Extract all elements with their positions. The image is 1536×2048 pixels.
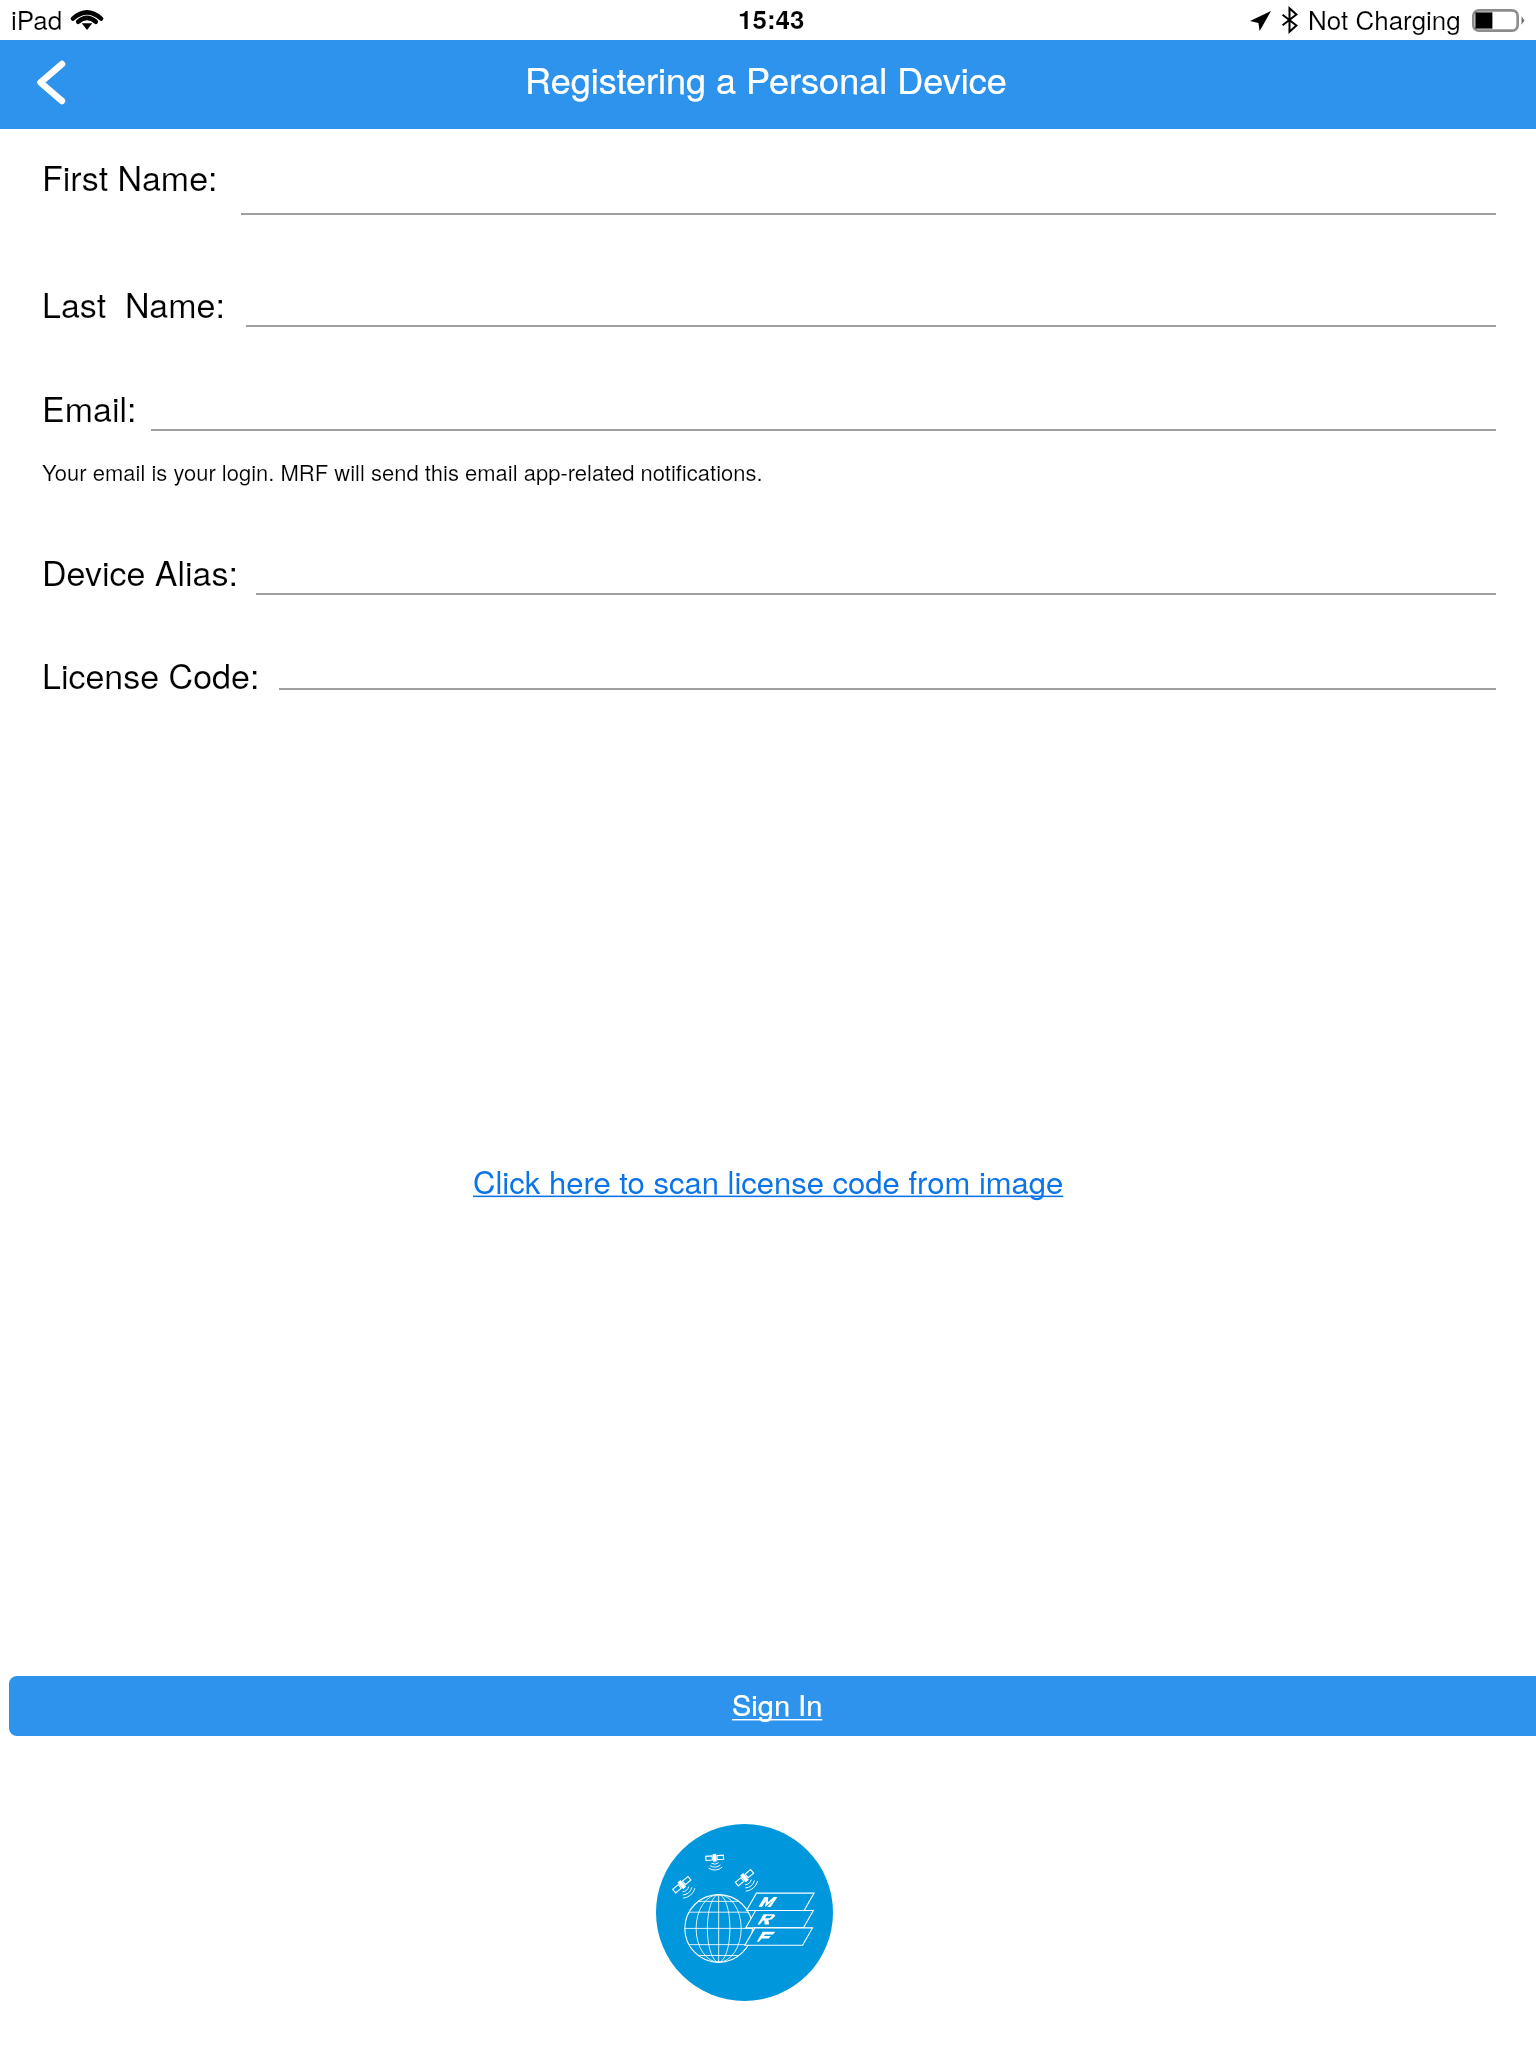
button[interactable]: Back [0, 40, 100, 129]
button[interactable]: Click here to scan license code from ima… [467, 1148, 1070, 1212]
button[interactable]: First Name text field [241, 171, 1496, 215]
staticText: Device Alias: [42, 547, 238, 596]
staticText: Click here to scan license code from ima… [473, 1158, 1064, 1202]
staticText: Email: [42, 383, 137, 432]
staticText: Not Charging [1308, 0, 1461, 37]
staticText: iPad [11, 0, 63, 37]
button[interactable]: Sign In [9, 1676, 1536, 1736]
staticText: First Name: [42, 152, 218, 201]
button[interactable]: Email text field [151, 387, 1496, 431]
button[interactable]: Last Name text field [246, 283, 1496, 327]
button[interactable]: Device Alias text field [256, 551, 1496, 595]
staticText: Sign In [732, 1683, 823, 1725]
staticText: License Code: [42, 650, 260, 699]
staticText: 15:43 [738, 0, 805, 37]
staticText: Last Name: [42, 279, 225, 328]
staticText: Registering a Personal Device [525, 53, 1007, 105]
button[interactable]: License Code text field [279, 646, 1496, 690]
staticText: Your email is your login. MRF will send … [42, 456, 763, 488]
